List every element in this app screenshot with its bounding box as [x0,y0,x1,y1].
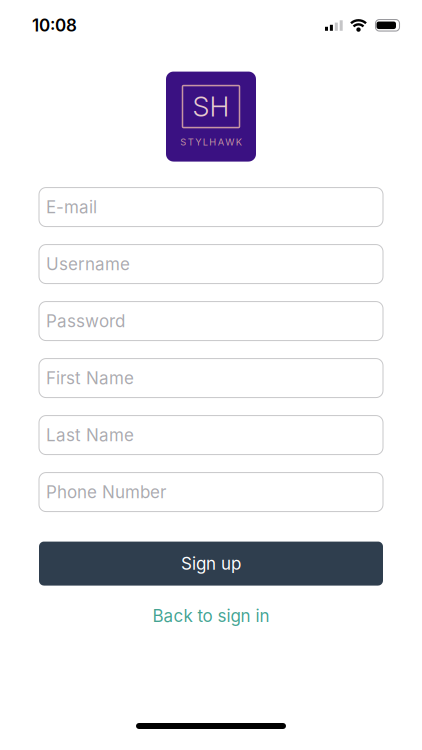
staticText: Password [46,311,125,331]
button[interactable]: Sign up [39,542,383,586]
button[interactable]: Last Name [39,416,383,455]
staticText: 10:08 [32,15,77,36]
button[interactable]: Back to sign in [152,606,269,626]
button[interactable]: Password [39,302,383,341]
staticText: Username [46,254,130,274]
staticText: Back to sign in [152,606,269,626]
button[interactable]: First Name [39,359,383,398]
staticText: SH [192,90,229,123]
staticText: First Name [46,368,134,388]
button[interactable]: Username [39,245,383,284]
button[interactable]: Phone Number [39,473,383,512]
staticText: Phone Number [46,482,166,502]
staticText: Last Name [46,425,134,445]
staticText: E-mail [46,197,97,217]
staticText: Sign up [181,553,241,574]
button[interactable]: E-mail [39,188,383,227]
staticText: STYLHAWK [180,137,242,148]
